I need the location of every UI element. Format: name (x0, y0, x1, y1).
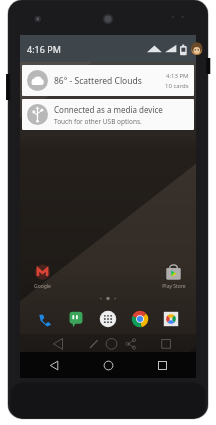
staticText: 4:16 PM (27, 43, 61, 55)
staticText: Connected as a media device (54, 104, 163, 115)
button[interactable]: Hangouts (65, 308, 87, 330)
button[interactable]: Chrome (129, 308, 151, 330)
button[interactable]: 86° - Scattered Clouds (22, 65, 194, 96)
button[interactable]: Back (34, 352, 74, 378)
button[interactable]: Google (26, 263, 59, 290)
staticText: Play Store (162, 283, 186, 290)
staticText: Google (34, 283, 51, 290)
button[interactable]: Connected as a media device (22, 99, 194, 130)
staticText: Touch for other USB options. (54, 117, 142, 126)
staticText: 86° - Scattered Clouds (54, 75, 142, 87)
button[interactable]: Photos (160, 308, 182, 330)
staticText: 4:13 PM (166, 72, 189, 80)
button[interactable]: Recents (142, 352, 182, 378)
staticText: 10 cards (165, 82, 189, 90)
button[interactable]: Phone (34, 308, 56, 330)
button[interactable]: Play Store (157, 263, 190, 290)
button[interactable]: Home (88, 352, 128, 378)
button[interactable]: All apps (97, 308, 119, 330)
